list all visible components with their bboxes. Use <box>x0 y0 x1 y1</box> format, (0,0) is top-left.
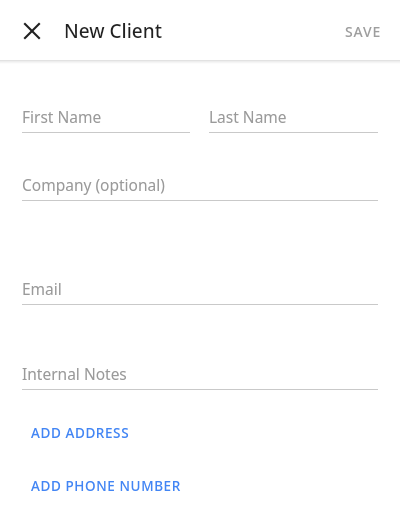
staticText: ADD PHONE NUMBER <box>31 477 181 495</box>
staticText: Company (optional) <box>22 174 165 195</box>
button[interactable]: Email <box>22 276 378 305</box>
button[interactable]: First Name <box>22 104 190 133</box>
staticText: SAVE <box>345 22 381 41</box>
staticText: Last Name <box>209 106 287 127</box>
staticText: New Client <box>64 18 162 44</box>
staticText: Internal Notes <box>22 363 127 384</box>
button[interactable]: ADD PHONE NUMBER <box>0 469 400 503</box>
button[interactable]: Close <box>11 10 53 52</box>
button[interactable]: Internal Notes <box>22 361 378 390</box>
button[interactable]: Company (optional) <box>22 172 378 201</box>
button[interactable]: ADD ADDRESS <box>0 416 400 450</box>
staticText: Email <box>22 278 62 299</box>
staticText: First Name <box>22 106 102 127</box>
staticText: ADD ADDRESS <box>31 424 130 442</box>
button[interactable]: SAVE <box>326 7 400 55</box>
button[interactable]: Last Name <box>209 104 378 133</box>
